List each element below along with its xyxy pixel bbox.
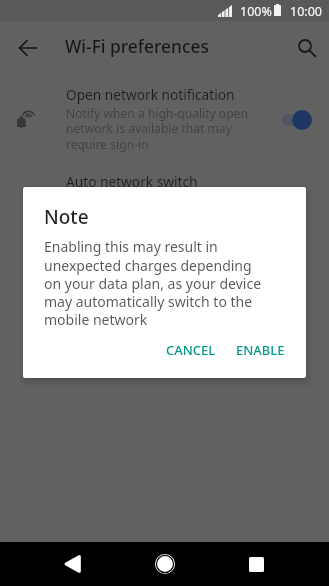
staticText: Wi-Fi preferences: [65, 34, 209, 58]
staticText: Notify when a high-quality open network …: [66, 105, 263, 153]
staticText: Note: [44, 204, 89, 230]
button[interactable]: Home: [143, 542, 187, 586]
staticText: 10:00: [290, 3, 322, 20]
staticText: Open network notification: [66, 85, 235, 104]
staticText: 100%: [240, 3, 272, 20]
button[interactable]: Recent apps: [234, 542, 278, 586]
button[interactable]: Open network notification toggle: [271, 85, 315, 133]
staticText: CANCEL: [166, 341, 216, 359]
button[interactable]: CANCEL: [158, 333, 224, 367]
staticText: Enabling this may result in unexpected c…: [44, 237, 265, 329]
button[interactable]: Navigate up: [10, 30, 46, 66]
button[interactable]: Search: [289, 30, 325, 66]
button[interactable]: Back: [51, 542, 95, 586]
staticText: ENABLE: [236, 341, 285, 359]
staticText: Auto network switch: [66, 172, 198, 191]
button[interactable]: ENABLE: [228, 333, 293, 367]
